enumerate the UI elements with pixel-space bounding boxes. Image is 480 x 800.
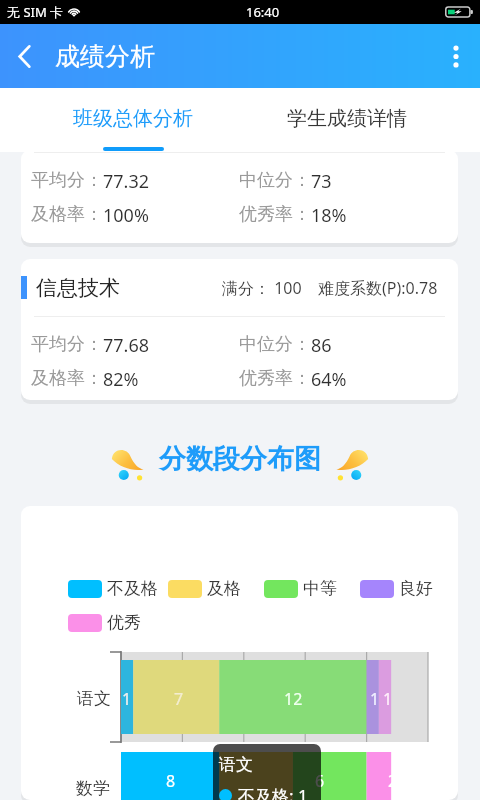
staticText: 及格 [207,578,241,599]
staticText: 语文 [77,688,111,709]
staticText: 不及格 [107,578,158,599]
button[interactable]: 班级总体分析 [26,88,240,152]
staticText: 86 [311,333,332,354]
staticText: 77.32 [103,169,150,190]
staticText: 2 [388,770,398,792]
staticText: 分数段分布图 [159,442,321,476]
staticText: 12 [284,688,303,710]
staticText: 平均分： [31,333,103,354]
staticText: 优秀 [107,612,141,633]
staticText: 优秀率： [239,203,311,224]
staticText: 中位分： [239,333,311,354]
button[interactable]: 学生成绩详情 [240,88,454,152]
staticText: 不及格: 1 [238,784,308,800]
staticText: 无 SIM 卡 [7,3,64,21]
staticText: 8 [166,770,176,792]
staticText: 成绩分析 [55,41,155,72]
staticText: 1 [370,688,380,710]
staticText: 班级总体分析 [73,106,193,131]
staticText: 良好 [399,578,433,599]
staticText: 1 [122,688,132,710]
staticText: 及格率： [31,367,103,388]
staticText: 难度系数(P):0.78 [318,277,438,299]
staticText: 平均分： [31,169,103,190]
staticText: 77.68 [103,333,150,354]
staticText: 7 [174,688,184,710]
button[interactable]: 更多选项 [432,32,480,80]
staticText: 1 [383,688,393,710]
staticText: 信息技术 [36,275,120,301]
button[interactable]: 返回 [0,32,48,80]
staticText: 中位分： [239,169,311,190]
staticText: 语文 [219,754,253,775]
staticText: 82% [103,367,139,388]
staticText: 满分： 100 [222,277,302,299]
staticText: 6 [315,770,325,792]
staticText: 100% [103,203,149,224]
staticText: 学生成绩详情 [287,106,407,131]
staticText: 优秀率： [239,367,311,388]
staticText: 73 [311,169,332,190]
staticText: 数学 [76,778,110,799]
staticText: 16:40 [246,3,280,21]
staticText: 及格率： [31,203,103,224]
staticText: 18% [311,203,347,224]
staticText: 64% [311,367,347,388]
staticText: 中等 [303,578,337,599]
